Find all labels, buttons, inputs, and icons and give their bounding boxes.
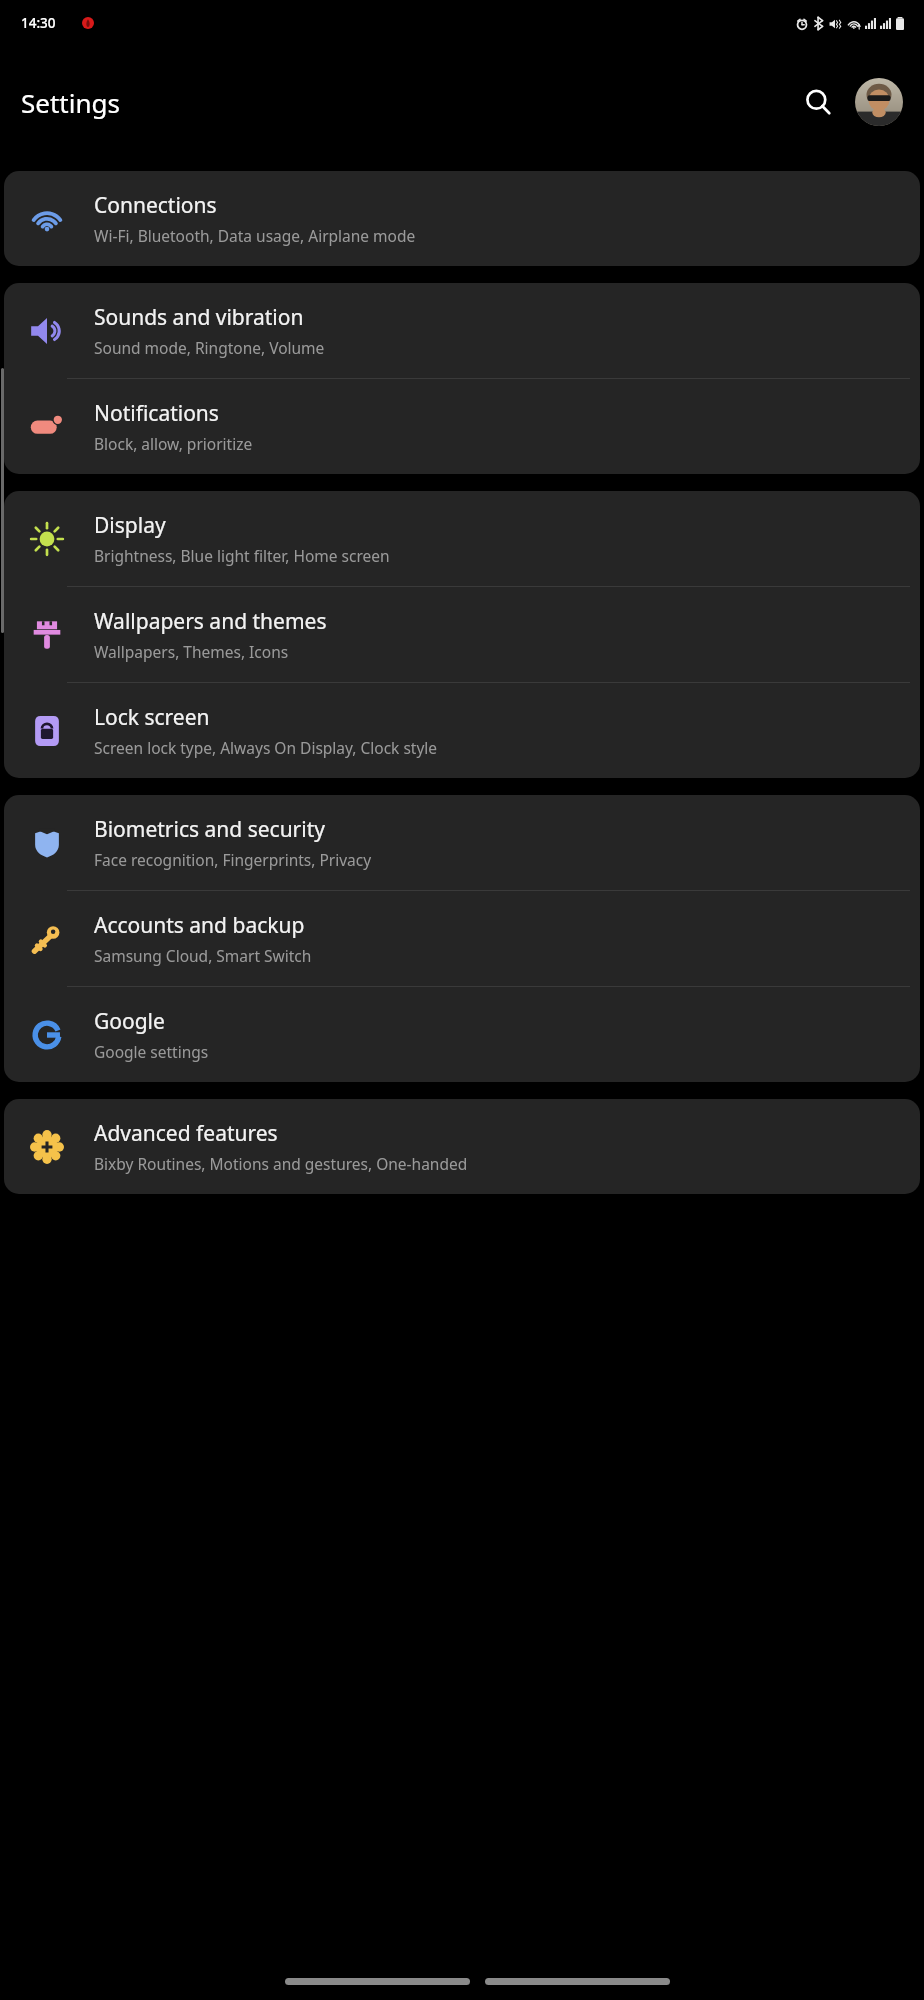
staticText: Settings — [21, 85, 120, 120]
staticText: Biometrics and security — [94, 815, 325, 844]
staticText: Wallpapers and themes — [94, 607, 327, 636]
button[interactable]: Sounds and vibration — [4, 283, 920, 378]
staticText: Face recognition, Fingerprints, Privacy — [94, 849, 372, 870]
button[interactable]: Wallpapers and themes — [4, 587, 920, 682]
button[interactable]: Account — [855, 78, 903, 126]
staticText: Screen lock type, Always On Display, Clo… — [94, 737, 438, 758]
button[interactable]: Lock screen — [4, 683, 920, 778]
staticText: Bixby Routines, Motions and gestures, On… — [94, 1153, 468, 1174]
staticText: Connections — [94, 191, 217, 220]
button[interactable]: Notifications — [4, 379, 920, 474]
staticText: Sounds and vibration — [94, 303, 304, 332]
staticText: Advanced features — [94, 1119, 278, 1148]
staticText: Notifications — [94, 399, 219, 428]
button[interactable]: Accounts and backup — [4, 891, 920, 986]
staticText: Accounts and backup — [94, 911, 305, 940]
staticText: 14:30 — [21, 14, 56, 32]
button[interactable]: Advanced features — [4, 1099, 920, 1194]
staticText: Lock screen — [94, 703, 210, 732]
staticText: Brightness, Blue light filter, Home scre… — [94, 545, 390, 566]
button[interactable]: Google — [4, 987, 920, 1082]
button[interactable]: Biometrics and security — [4, 795, 920, 890]
button[interactable]: Connections — [4, 171, 920, 266]
staticText: Google settings — [94, 1041, 209, 1062]
button[interactable]: Display — [4, 491, 920, 586]
staticText: Wallpapers, Themes, Icons — [94, 641, 289, 662]
button[interactable]: Search — [795, 79, 841, 125]
staticText: Sound mode, Ringtone, Volume — [94, 337, 325, 358]
staticText: Display — [94, 511, 166, 540]
staticText: Google — [94, 1007, 165, 1036]
staticText: Samsung Cloud, Smart Switch — [94, 945, 312, 966]
staticText: Wi-Fi, Bluetooth, Data usage, Airplane m… — [94, 225, 416, 246]
staticText: Block, allow, prioritize — [94, 433, 253, 454]
